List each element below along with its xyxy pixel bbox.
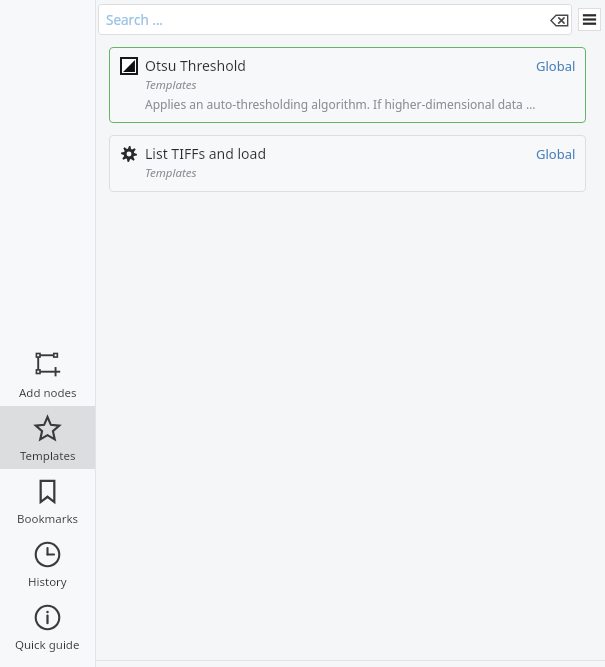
button[interactable]: Bookmarks	[0, 469, 95, 532]
button[interactable]: History	[0, 532, 95, 595]
button[interactable]: Add nodes	[0, 343, 95, 406]
staticText: Global	[536, 145, 576, 163]
button[interactable]: Search …	[98, 4, 572, 35]
staticText: Templates	[20, 448, 76, 464]
staticText: Applies an auto-thresholding algorithm. …	[145, 96, 536, 112]
staticText: Global	[536, 57, 576, 75]
button[interactable]: Clear search	[546, 7, 572, 33]
staticText: Add nodes	[19, 385, 77, 401]
button[interactable]: Menu	[578, 8, 601, 31]
button[interactable]: Otsu Threshold	[121, 56, 576, 112]
button[interactable]: Quick guide	[0, 595, 95, 658]
staticText: List TIFFs and load	[145, 144, 267, 163]
staticText: Search …	[106, 11, 546, 29]
button[interactable]: List TIFFs and load	[121, 144, 576, 181]
staticText: Otsu Threshold	[145, 56, 246, 75]
button[interactable]: Templates	[0, 406, 95, 469]
staticText: Templates	[145, 165, 197, 181]
staticText: History	[28, 574, 67, 590]
staticText: Quick guide	[15, 637, 80, 653]
staticText: Bookmarks	[17, 511, 79, 527]
staticText: Templates	[145, 77, 197, 93]
